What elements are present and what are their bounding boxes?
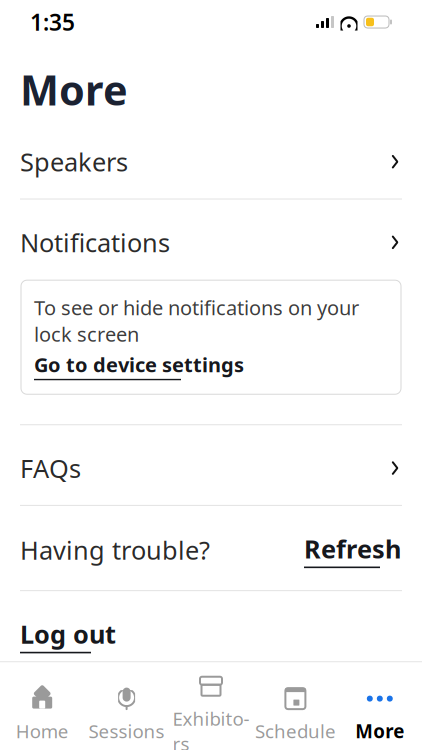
button[interactable]: Home: [0, 686, 84, 743]
staticText: Speakers: [20, 145, 128, 178]
staticText: Schedule: [255, 719, 336, 743]
staticText: 1:35: [30, 7, 75, 37]
button[interactable]: FAQs: [0, 425, 422, 505]
staticText: Go to device settings: [34, 351, 244, 378]
button[interactable]: Sessions: [84, 686, 169, 743]
button[interactable]: Speakers: [0, 117, 422, 198]
staticText: Sessions: [89, 719, 165, 743]
staticText: More: [20, 62, 128, 117]
button[interactable]: Notifications: [0, 199, 422, 277]
staticText: Refresh: [304, 532, 401, 565]
staticText: Exhibitors: [172, 706, 249, 750]
staticText: Notifications: [20, 225, 170, 259]
button[interactable]: To see or hide notifications on your loc…: [0, 280, 401, 394]
button[interactable]: Exhibitors: [169, 673, 253, 750]
button[interactable]: Schedule: [253, 686, 338, 743]
button[interactable]: Refresh: [304, 532, 401, 568]
staticText: More: [355, 719, 404, 743]
staticText: Home: [16, 719, 69, 743]
staticText: FAQs: [20, 451, 81, 485]
staticText: To see or hide notifications on your loc…: [34, 294, 359, 347]
button[interactable]: More: [338, 686, 422, 743]
staticText: Having trouble?: [20, 533, 210, 567]
button[interactable]: Log out: [20, 617, 116, 653]
staticText: Log out: [20, 617, 116, 651]
